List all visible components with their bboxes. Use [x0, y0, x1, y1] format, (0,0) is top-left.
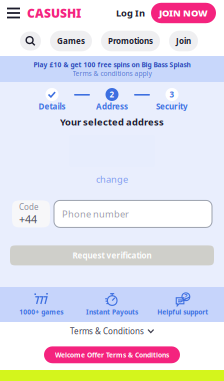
staticText: CASUSHI	[27, 5, 81, 21]
button[interactable]: Join	[169, 31, 198, 51]
staticText: Your selected address	[60, 116, 164, 128]
staticText: 2	[109, 89, 114, 100]
button[interactable]: Games	[50, 31, 92, 51]
button[interactable]: Terms & Conditions	[70, 321, 154, 341]
button[interactable]: change	[90, 170, 134, 188]
staticText: Code	[19, 201, 39, 212]
staticText: Terms & Conditions	[70, 326, 144, 336]
staticText: Phone number	[62, 208, 129, 220]
staticText: change	[96, 173, 128, 185]
button[interactable]: JOIN NOW	[151, 3, 216, 23]
staticText: Join	[176, 36, 191, 46]
staticText: Address	[96, 101, 128, 112]
staticText: Play £10 & get 100 free spins on Big Bas…	[33, 60, 190, 69]
button[interactable]: Log In	[110, 2, 151, 24]
staticText: JOIN NOW	[159, 7, 208, 19]
staticText: Instant Payouts	[86, 308, 138, 316]
staticText: Details	[38, 101, 65, 112]
button[interactable]: Menu	[0, 1, 27, 25]
staticText: Request verification	[72, 250, 151, 261]
button[interactable]: Promotions	[101, 31, 160, 51]
staticText: ?	[184, 292, 187, 301]
staticText: +44	[19, 212, 37, 226]
button[interactable]: Search	[20, 31, 41, 50]
button[interactable]: Request verification	[10, 245, 214, 265]
staticText: 1000+ games	[19, 308, 63, 316]
staticText: 3	[169, 89, 174, 100]
staticText: Security	[156, 101, 188, 112]
staticText: Welcome Offer Terms & Conditions	[55, 350, 169, 359]
staticText: Log In	[116, 7, 145, 19]
staticText: Helpful support	[157, 308, 208, 316]
staticText: Terms & conditions apply	[72, 69, 151, 78]
staticText: Games	[57, 36, 85, 46]
staticText: Promotions	[108, 36, 153, 46]
button[interactable]: Welcome Offer Terms & Conditions	[44, 346, 180, 363]
